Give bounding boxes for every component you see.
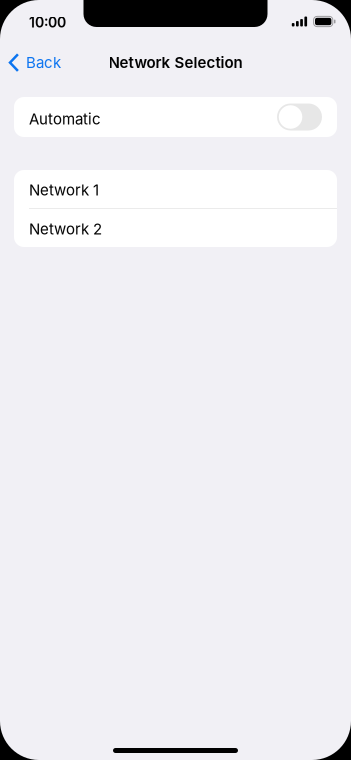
staticText: Automatic (29, 110, 101, 128)
button[interactable]: Network 2 (14, 209, 337, 247)
button[interactable]: Automatic (14, 97, 337, 137)
staticText: Network 1 (29, 181, 99, 199)
staticText: Network Selection (108, 53, 242, 71)
button[interactable]: Network 1 (14, 170, 337, 208)
button[interactable]: Back (0, 43, 73, 79)
staticText: Back (26, 53, 61, 71)
staticText: Network 2 (29, 220, 102, 238)
staticText: 10:00 (29, 14, 66, 31)
